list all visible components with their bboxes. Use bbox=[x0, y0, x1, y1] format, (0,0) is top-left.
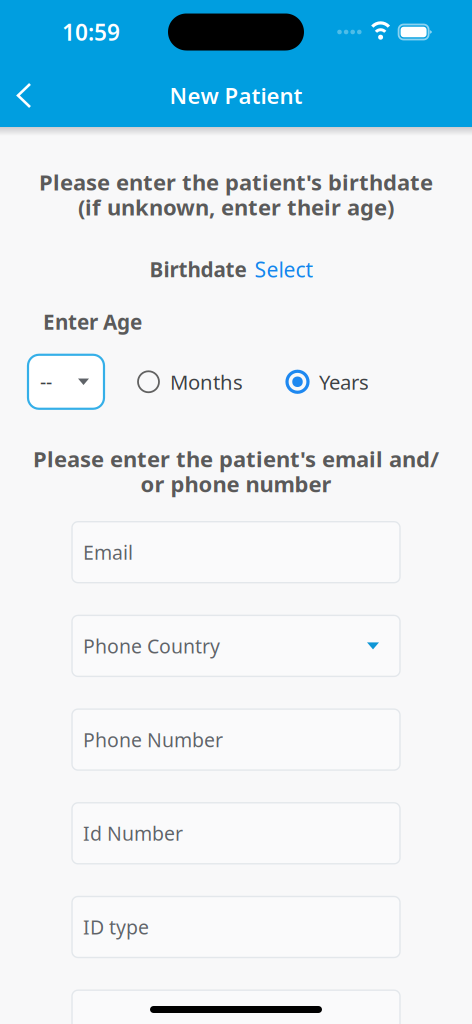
button[interactable]: Select bbox=[254, 255, 313, 284]
staticText: 10:59 bbox=[62, 17, 120, 47]
staticText: Years bbox=[319, 368, 369, 396]
staticText: -- bbox=[40, 368, 52, 395]
button[interactable]: Email bbox=[72, 522, 400, 583]
button[interactable]: Phone Number bbox=[72, 709, 400, 770]
button[interactable]: Months bbox=[138, 368, 243, 396]
staticText: Please enter the patient's email and/ bbox=[33, 444, 439, 474]
button[interactable]: Id Number bbox=[72, 803, 400, 864]
button[interactable]: ID type bbox=[72, 896, 400, 957]
staticText: Id Number bbox=[83, 820, 183, 846]
button[interactable]: Back bbox=[0, 70, 50, 121]
staticText: New Patient bbox=[169, 80, 302, 110]
staticText: (if unknown, enter their age) bbox=[78, 192, 394, 222]
staticText: Phone Number bbox=[83, 726, 223, 753]
staticText: Phone Country bbox=[83, 633, 220, 659]
staticText: Email bbox=[83, 539, 133, 565]
staticText: Enter Age bbox=[43, 308, 142, 336]
button[interactable]: -- bbox=[28, 355, 104, 409]
staticText: Please enter the patient's birthdate bbox=[39, 167, 433, 197]
button[interactable] bbox=[72, 990, 400, 1024]
button[interactable]: Years bbox=[287, 368, 369, 396]
staticText: or phone number bbox=[140, 469, 331, 499]
staticText: Birthdate bbox=[149, 255, 246, 283]
staticText: Months bbox=[170, 368, 243, 396]
staticText: Select bbox=[254, 255, 313, 284]
button[interactable]: Phone Country bbox=[72, 615, 400, 676]
staticText: ID type bbox=[83, 914, 149, 940]
